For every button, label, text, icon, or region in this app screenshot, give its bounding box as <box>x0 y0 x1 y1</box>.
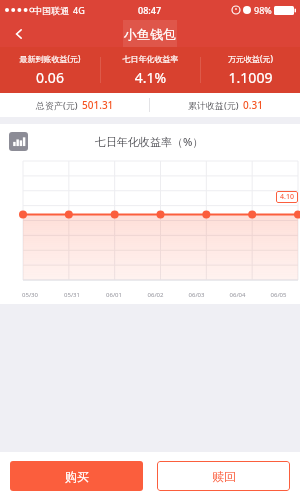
staticText: 05/30 <box>9 291 51 299</box>
staticText: 万元收益(元) <box>201 53 300 64</box>
staticText: 06/04 <box>217 291 258 299</box>
staticText: 0.31 <box>243 98 263 112</box>
staticText: 中国联通 <box>33 5 69 16</box>
staticText: 赎回 <box>212 469 236 484</box>
button[interactable]: 累计收益(元) <box>150 93 300 117</box>
button[interactable]: 赎回 <box>157 461 290 491</box>
staticText: 总资产(元) <box>36 99 78 111</box>
button[interactable]: 七日年化收益率 <box>101 54 200 87</box>
staticText: 06/05 <box>258 291 299 299</box>
button[interactable]: 万元收益(元) <box>201 53 300 87</box>
staticText: 小鱼钱包 <box>124 26 176 42</box>
staticText: 最新到账收益(元) <box>0 53 100 64</box>
staticText: 4.00 <box>0 215 22 216</box>
staticText: 06/01 <box>93 291 135 299</box>
staticText: 4.10 <box>280 192 294 202</box>
staticText: 05/31 <box>51 291 93 299</box>
staticText: 501.31 <box>82 98 114 112</box>
button[interactable]: Back <box>0 20 38 47</box>
button[interactable]: 总资产(元) <box>0 93 149 117</box>
staticText: 06/03 <box>176 291 217 299</box>
staticText: 0.06 <box>0 68 100 87</box>
staticText: 4G <box>73 4 85 16</box>
staticText: 1.1009 <box>201 68 300 87</box>
staticText: 七日年化收益率 <box>101 54 200 64</box>
staticText: 06/02 <box>135 291 176 299</box>
staticText: 累计收益(元) <box>188 99 239 111</box>
button[interactable]: 购买 <box>10 461 143 491</box>
staticText: 08:47 <box>138 4 162 16</box>
button[interactable]: 最新到账收益(元) <box>0 53 100 87</box>
staticText: 七日年化收益率（%） <box>95 134 204 149</box>
staticText: 4.1% <box>101 68 200 87</box>
staticText: 购买 <box>65 469 89 484</box>
staticText: 98% <box>254 4 272 16</box>
